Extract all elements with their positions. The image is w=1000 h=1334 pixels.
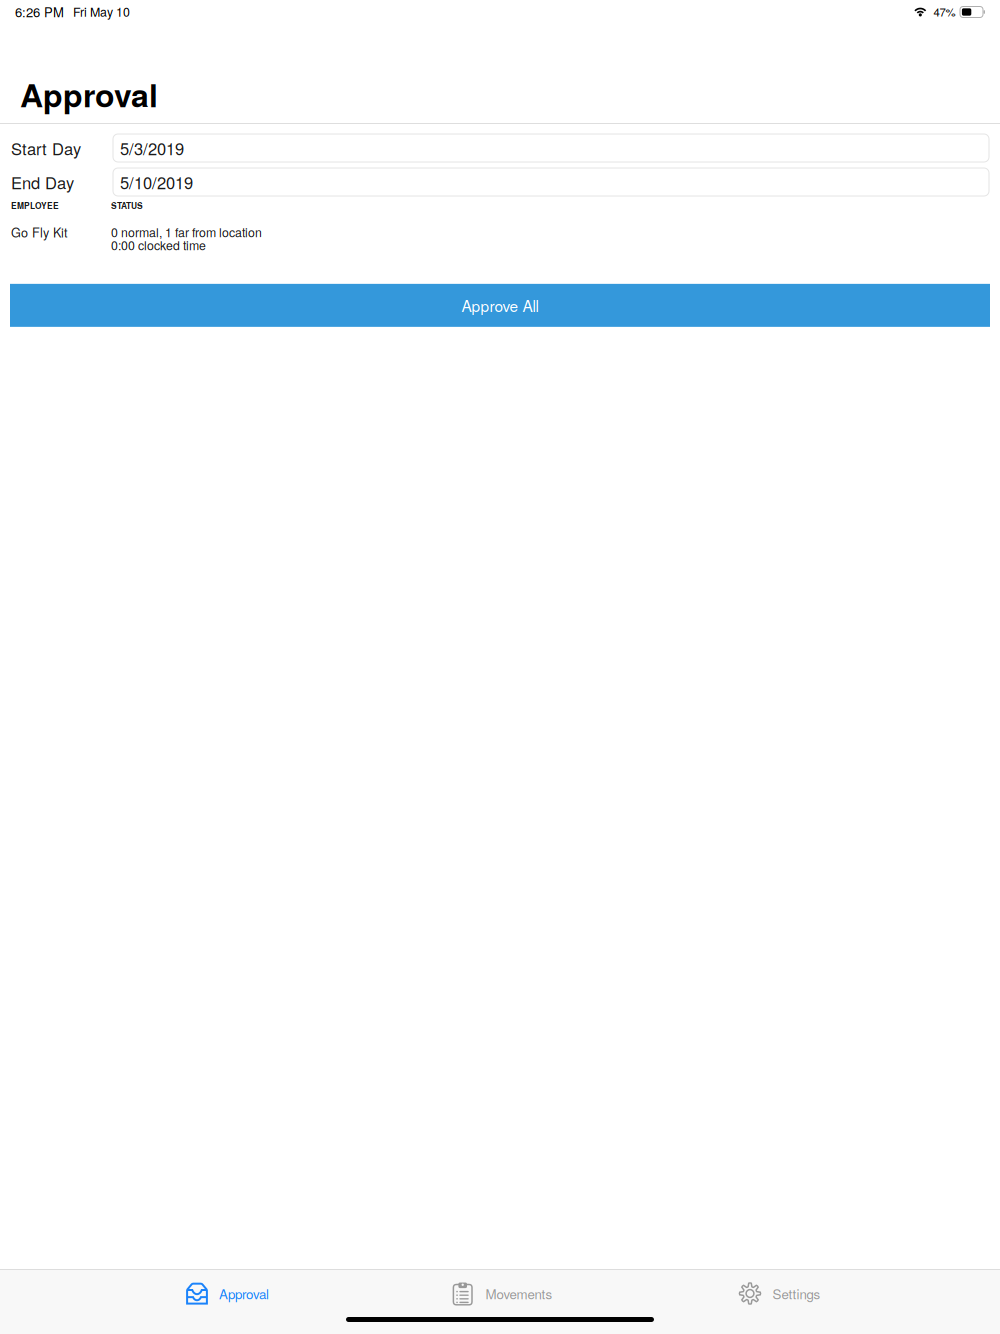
staticText: Approve All <box>461 294 538 316</box>
button[interactable]: Approval <box>89 1270 365 1317</box>
staticText: End Day <box>11 170 74 194</box>
button[interactable]: Movements <box>365 1270 641 1317</box>
staticText: Movements <box>485 1284 552 1303</box>
staticText: 47% <box>933 3 955 20</box>
staticText: 5/10/2019 <box>120 170 193 194</box>
staticText: Go Fly Kit <box>11 223 68 241</box>
staticText: 0:00 clocked time <box>111 236 206 254</box>
staticText: Fri May 10 <box>73 3 130 20</box>
button[interactable]: 5/3/2019 <box>113 134 989 162</box>
staticText: Start Day <box>11 136 81 160</box>
staticText: 6:26 PM <box>15 2 64 21</box>
staticText: EMPLOYEE <box>11 199 59 211</box>
staticText: Approval <box>20 71 158 117</box>
staticText: Approval <box>219 1284 269 1303</box>
staticText: STATUS <box>111 199 143 211</box>
staticText: 5/3/2019 <box>120 136 184 160</box>
staticText: 0 normal, 1 far from location <box>111 223 262 241</box>
button[interactable]: Settings <box>641 1270 917 1317</box>
button[interactable]: Approve All <box>10 284 990 327</box>
button[interactable]: 5/10/2019 <box>113 168 989 196</box>
staticText: Settings <box>772 1284 820 1303</box>
